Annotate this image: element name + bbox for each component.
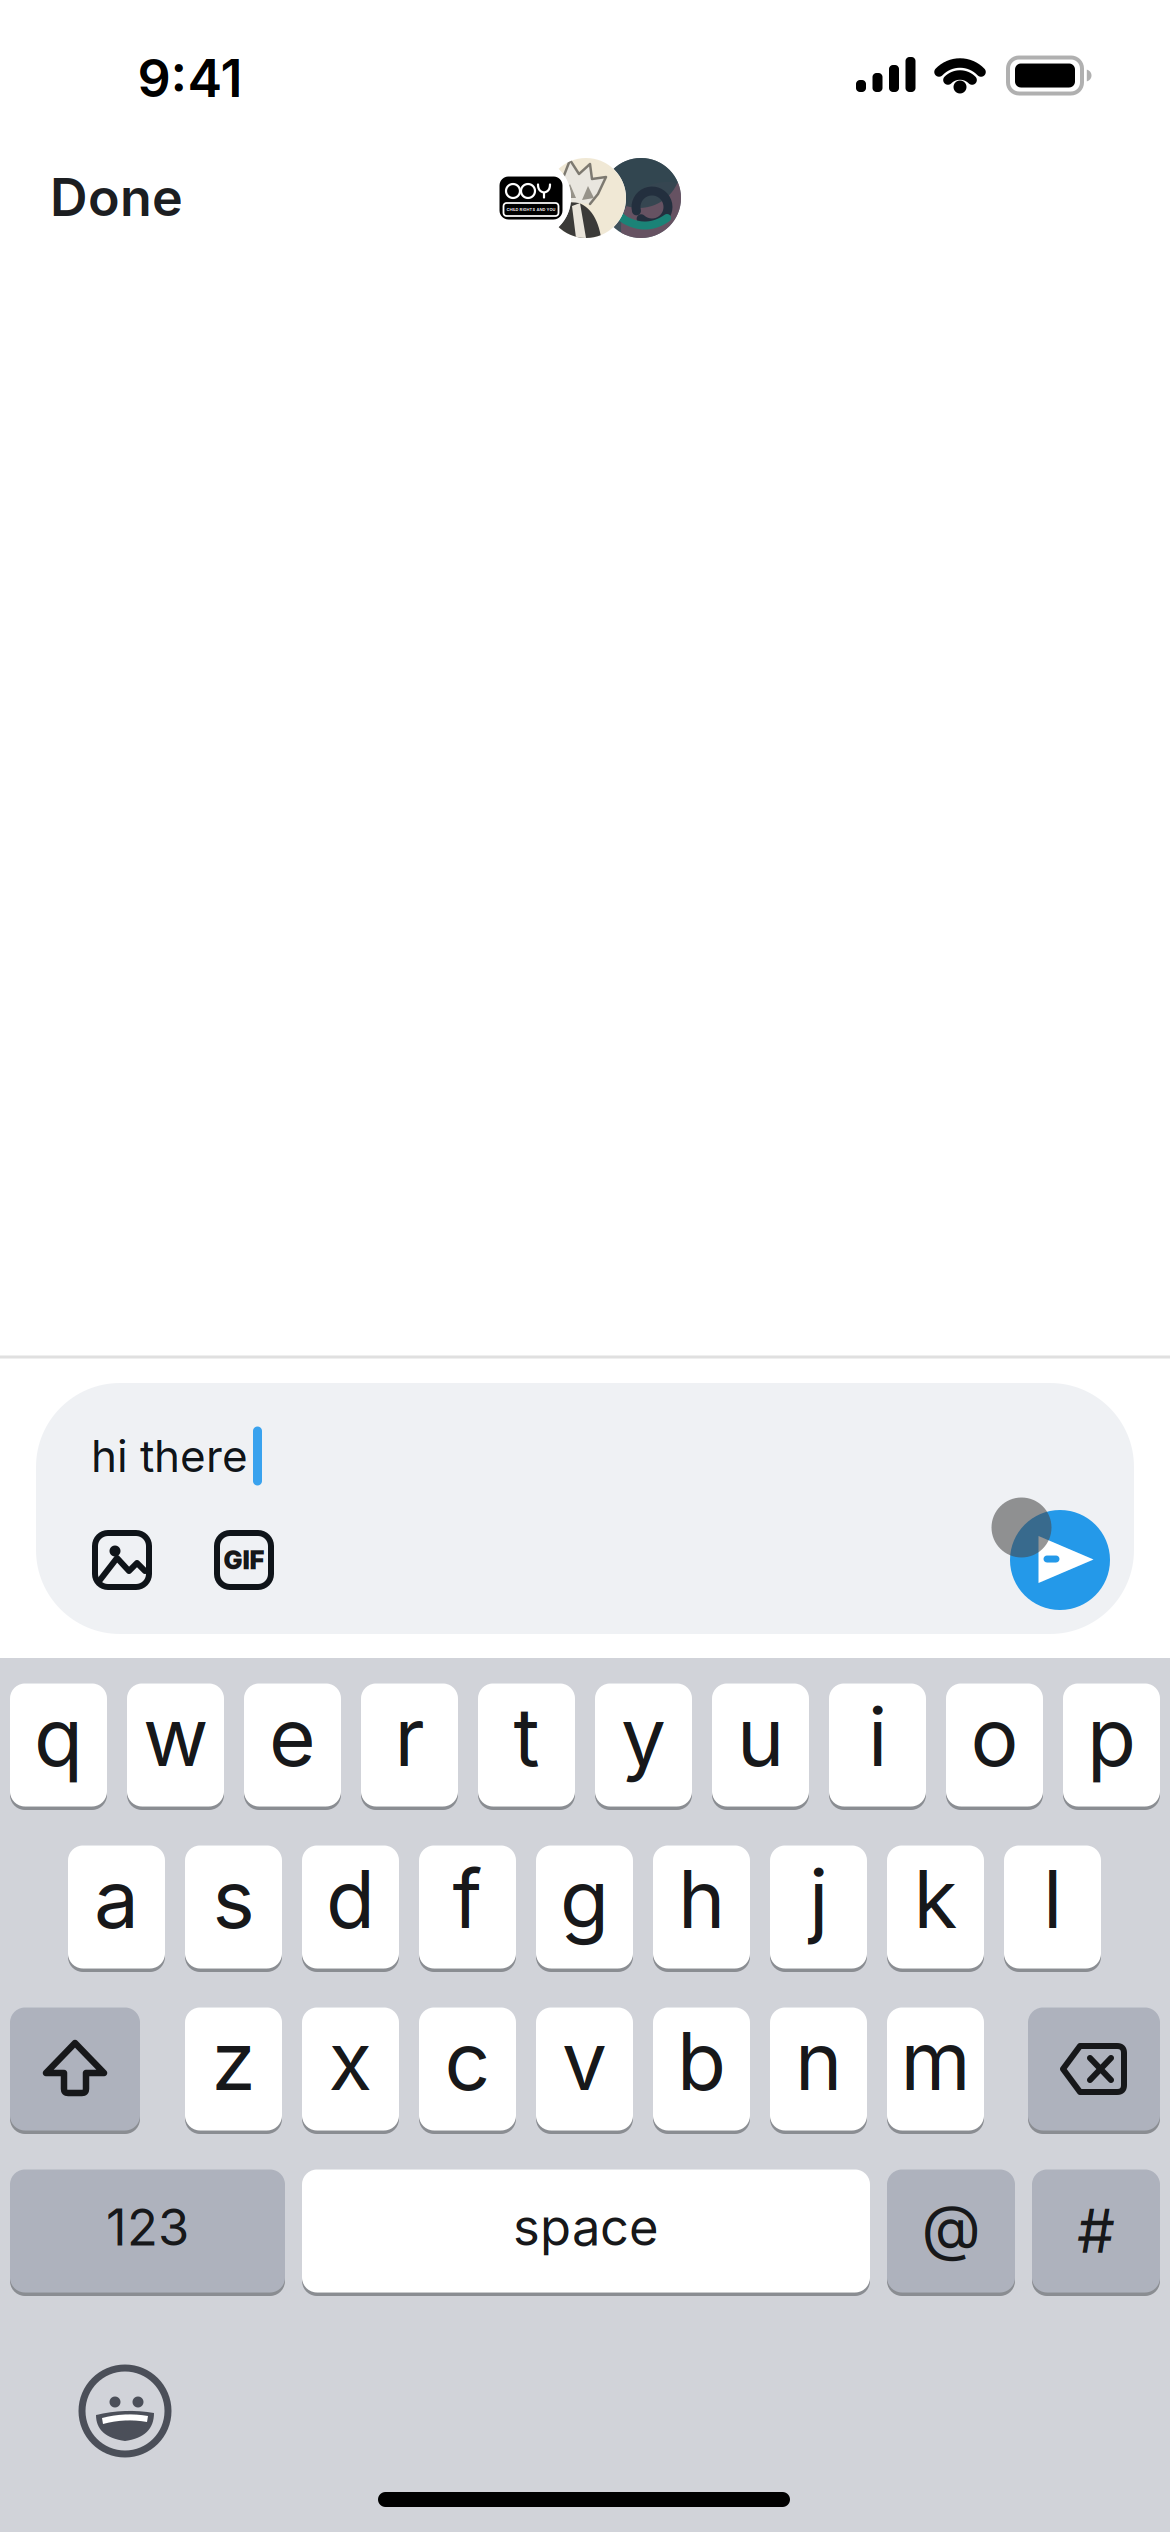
button[interactable]: h xyxy=(653,1844,750,1970)
button[interactable]: b xyxy=(653,2006,750,2132)
button[interactable]: f xyxy=(419,1844,516,1970)
button[interactable]: t xyxy=(478,1682,575,1808)
staticText: c xyxy=(444,2014,490,2108)
button[interactable]: u xyxy=(712,1682,809,1808)
staticText: a xyxy=(94,1852,139,1946)
button[interactable]: Done xyxy=(50,166,183,228)
staticText: v xyxy=(562,2014,607,2108)
staticText: hi there xyxy=(91,1430,248,1482)
button[interactable]: w xyxy=(127,1682,224,1808)
staticText: r xyxy=(394,1690,424,1784)
button[interactable]: l xyxy=(1004,1844,1101,1970)
button[interactable]: y xyxy=(595,1682,692,1808)
button[interactable]: z xyxy=(185,2006,282,2132)
button[interactable]: j xyxy=(770,1844,867,1970)
staticText: o xyxy=(970,1690,1018,1784)
button[interactable]: Shift xyxy=(10,2006,140,2132)
staticText: 123 xyxy=(106,2197,189,2257)
button[interactable]: Attach photo xyxy=(89,1527,155,1593)
staticText: t xyxy=(513,1690,539,1784)
staticText: i xyxy=(868,1690,887,1784)
button[interactable]: a xyxy=(68,1844,165,1970)
button[interactable]: r xyxy=(361,1682,458,1808)
button[interactable]: space xyxy=(302,2168,870,2294)
staticText: p xyxy=(1087,1690,1136,1784)
staticText: y xyxy=(621,1690,666,1784)
staticText: j xyxy=(809,1852,828,1946)
button[interactable]: Message field xyxy=(36,1383,1134,1634)
staticText: g xyxy=(560,1852,609,1946)
staticText: x xyxy=(328,2014,372,2108)
staticText: u xyxy=(737,1690,784,1784)
button[interactable]: d xyxy=(302,1844,399,1970)
button[interactable]: p xyxy=(1063,1682,1160,1808)
staticText: e xyxy=(269,1690,316,1784)
staticText: h xyxy=(678,1852,725,1946)
button[interactable]: c xyxy=(419,2006,516,2132)
staticText: s xyxy=(212,1852,254,1946)
staticText: @ xyxy=(921,2191,980,2263)
button[interactable]: n xyxy=(770,2006,867,2132)
staticText: w xyxy=(143,1690,208,1784)
button[interactable]: Attach GIF xyxy=(211,1527,277,1593)
button[interactable]: Conversation participants xyxy=(486,152,686,244)
staticText: k xyxy=(913,1852,957,1946)
staticText: CHILD RIGHTS AND YOU xyxy=(506,207,555,212)
button[interactable]: g xyxy=(536,1844,633,1970)
staticText: space xyxy=(513,2197,659,2257)
staticText: b xyxy=(677,2014,726,2108)
button[interactable]: k xyxy=(887,1844,984,1970)
button[interactable]: x xyxy=(302,2006,399,2132)
staticText: Done xyxy=(50,166,183,228)
staticText: z xyxy=(211,2014,255,2108)
button[interactable]: Emoji xyxy=(81,2367,169,2455)
button[interactable]: 123 xyxy=(10,2168,285,2294)
button[interactable]: v xyxy=(536,2006,633,2132)
staticText: 9:41 xyxy=(137,47,242,109)
staticText: d xyxy=(326,1852,375,1946)
staticText: l xyxy=(1043,1852,1062,1946)
button[interactable]: i xyxy=(829,1682,926,1808)
staticText: n xyxy=(795,2014,842,2108)
staticText: GIF xyxy=(223,1545,264,1575)
staticText: f xyxy=(452,1852,482,1946)
button[interactable]: e xyxy=(244,1682,341,1808)
button[interactable]: q xyxy=(10,1682,107,1808)
button[interactable]: s xyxy=(185,1844,282,1970)
button[interactable]: m xyxy=(887,2006,984,2132)
staticText: m xyxy=(900,2014,970,2108)
button[interactable]: Send xyxy=(1010,1510,1110,1610)
button[interactable]: o xyxy=(946,1682,1043,1808)
button[interactable]: Delete xyxy=(1028,2006,1160,2132)
staticText: # xyxy=(1077,2196,1115,2266)
button[interactable]: # xyxy=(1032,2168,1160,2294)
staticText: q xyxy=(34,1690,83,1784)
button[interactable]: @ xyxy=(887,2168,1015,2294)
